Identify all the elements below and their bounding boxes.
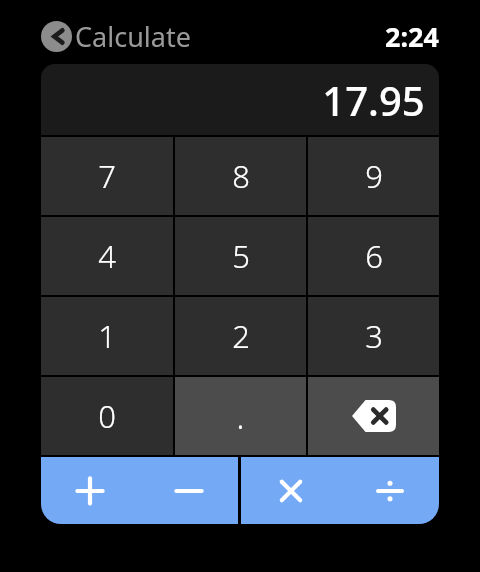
button[interactable]: Plus <box>41 457 139 524</box>
button[interactable]: 4 <box>41 217 173 295</box>
button[interactable]: Multiply <box>241 457 340 524</box>
button[interactable]: 8 <box>175 137 306 215</box>
staticText: 2:24 <box>385 18 439 55</box>
button[interactable]: 9 <box>308 137 439 215</box>
staticText: 2 <box>232 315 250 357</box>
staticText: 5 <box>232 235 250 277</box>
staticText: 7 <box>98 155 116 197</box>
staticText: Calculate <box>75 18 191 55</box>
staticText: 3 <box>365 315 383 357</box>
button[interactable]: 7 <box>41 137 173 215</box>
button[interactable]: Back to Calculate <box>41 18 191 55</box>
staticText: 6 <box>365 235 383 277</box>
staticText: 17.95 <box>322 73 425 127</box>
staticText: . <box>236 393 245 439</box>
button[interactable]: 5 <box>175 217 306 295</box>
staticText: 4 <box>98 235 116 277</box>
staticText: 1 <box>98 315 116 357</box>
button[interactable]: 3 <box>308 297 439 375</box>
button[interactable]: 6 <box>308 217 439 295</box>
staticText: 9 <box>365 155 383 197</box>
button[interactable]: Backspace <box>308 377 439 455</box>
button[interactable]: 0 <box>41 377 173 455</box>
staticText: 0 <box>98 395 116 437</box>
button[interactable]: Divide <box>340 457 439 524</box>
button[interactable]: 17.95 <box>41 64 439 135</box>
button[interactable]: . <box>175 377 306 455</box>
staticText: 8 <box>232 155 250 197</box>
button[interactable]: Minus <box>139 457 238 524</box>
button[interactable]: 1 <box>41 297 173 375</box>
button[interactable]: 2 <box>175 297 306 375</box>
